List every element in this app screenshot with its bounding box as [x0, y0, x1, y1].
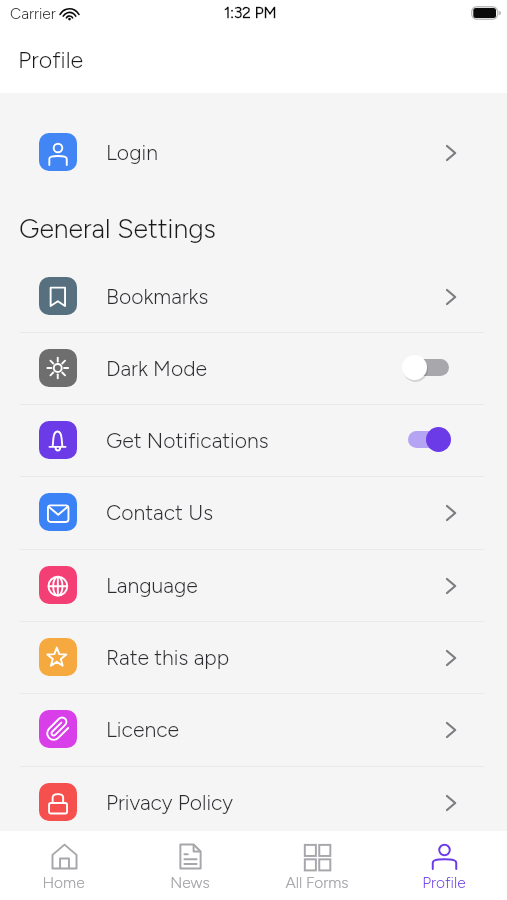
button[interactable]: Get Notifications: [0, 404, 507, 476]
staticText: Contact Us: [106, 500, 214, 525]
staticText: Privacy Policy: [106, 790, 234, 815]
staticText: Home: [42, 873, 85, 892]
button[interactable]: Privacy Policy: [0, 766, 507, 838]
staticText: Language: [106, 573, 198, 598]
other: Licence: [446, 722, 456, 738]
staticText: Carrier: [10, 4, 56, 23]
button[interactable]: News: [126, 831, 253, 900]
other: Language: [446, 578, 456, 594]
staticText: General Settings: [19, 213, 217, 245]
other: Login: [446, 145, 456, 161]
button[interactable]: Language: [0, 549, 507, 621]
staticText: Get Notifications: [106, 428, 269, 453]
other: Privacy Policy: [446, 795, 456, 811]
other: Bookmarks: [446, 289, 456, 305]
staticText: Licence: [106, 717, 180, 742]
staticText: Rate this app: [106, 645, 230, 670]
staticText: Login: [106, 140, 158, 165]
staticText: All Forms: [285, 873, 349, 892]
staticText: 1:32 PM: [224, 3, 277, 22]
button[interactable]: Rate this app: [0, 621, 507, 693]
button[interactable]: All Forms: [253, 831, 380, 900]
button[interactable]: Profile: [380, 831, 507, 900]
staticText: Profile: [422, 873, 466, 892]
button[interactable]: Licence: [0, 693, 507, 765]
button[interactable]: Home: [0, 831, 126, 900]
button[interactable]: Dark Mode: [0, 332, 507, 404]
button[interactable]: Toggle off: [402, 355, 452, 381]
staticText: Profile: [18, 46, 84, 74]
button[interactable]: Login: [0, 116, 507, 188]
staticText: News: [170, 873, 210, 892]
button[interactable]: Toggle on: [402, 427, 452, 453]
staticText: Bookmarks: [106, 284, 209, 309]
staticText: Dark Mode: [106, 356, 207, 381]
button[interactable]: Bookmarks: [0, 260, 507, 332]
other: Contact Us: [446, 505, 456, 521]
button[interactable]: Contact Us: [0, 476, 507, 548]
other: Rate this app: [446, 650, 456, 666]
